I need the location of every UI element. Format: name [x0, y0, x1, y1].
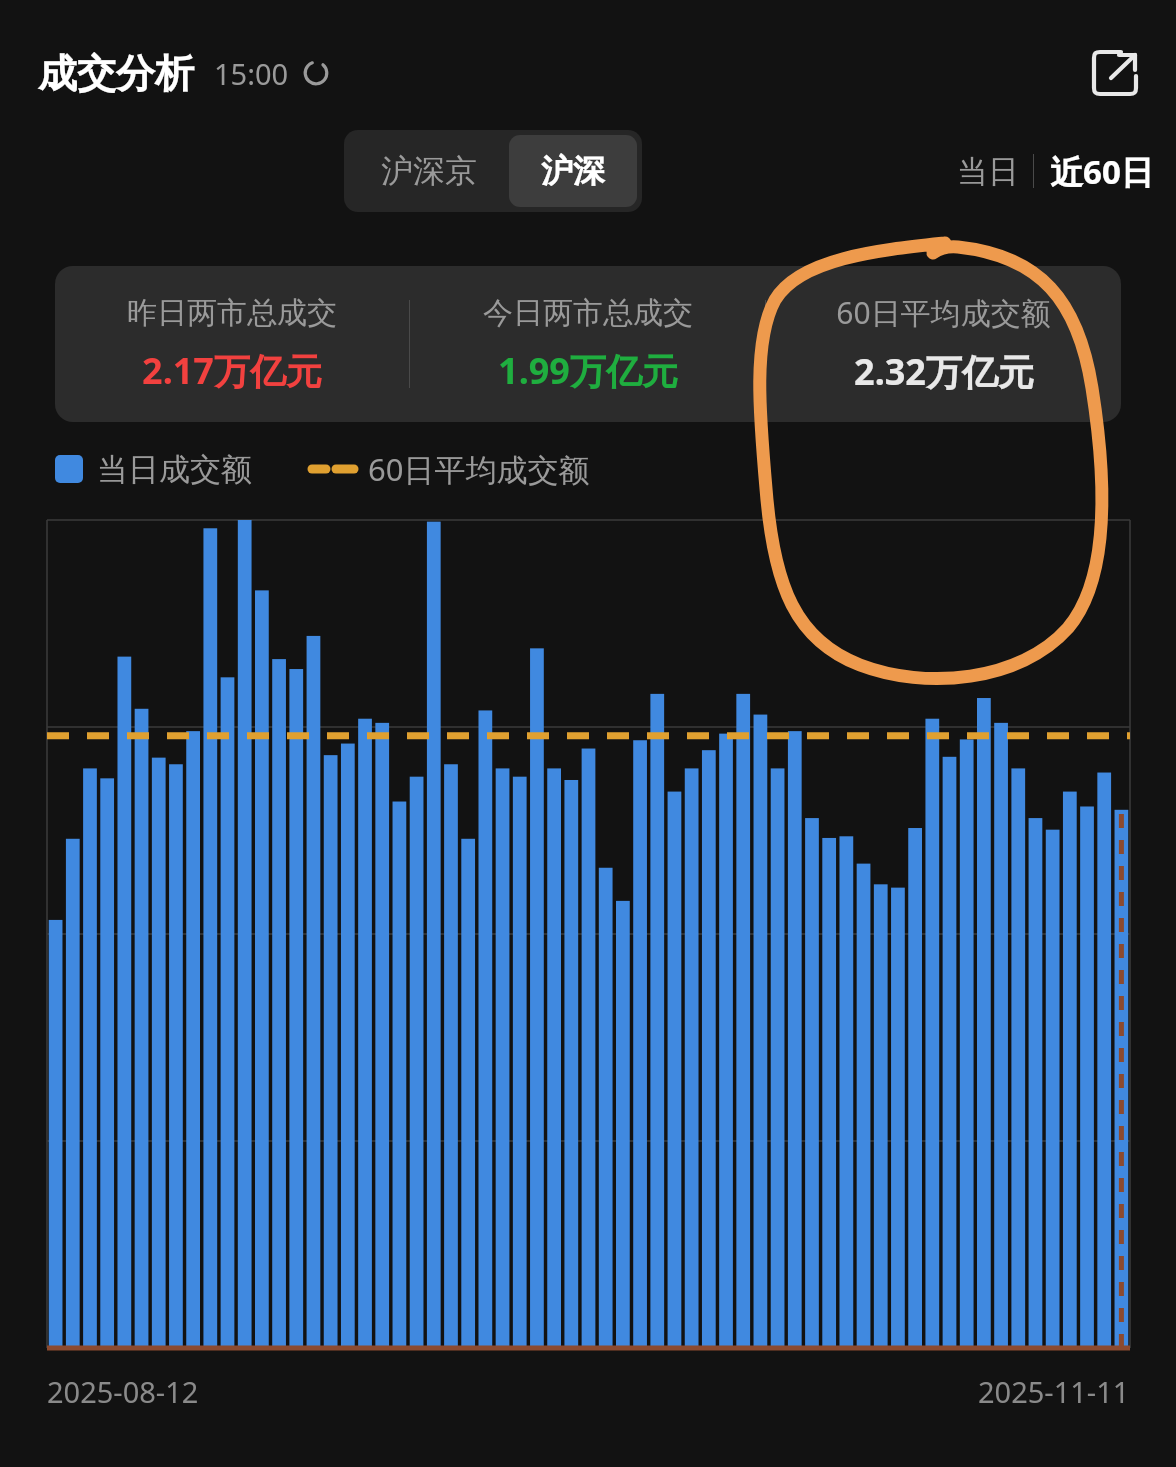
- button[interactable]: 当日: [943, 142, 1033, 201]
- button[interactable]: 近60日: [1034, 141, 1176, 202]
- staticText: 昨日两市总成交: [127, 294, 337, 332]
- button[interactable]: Share: [1084, 42, 1146, 104]
- staticText: 当日: [957, 152, 1019, 191]
- staticText: 2.17万亿元: [142, 346, 322, 395]
- staticText: 近60日: [1050, 149, 1154, 194]
- staticText: 当日成交额: [97, 450, 252, 489]
- staticText: 60日平均成交额: [836, 292, 1051, 333]
- button[interactable]: 沪深京: [349, 135, 509, 207]
- staticText: 沪深: [541, 151, 605, 191]
- staticText: 1.99万亿元: [498, 346, 678, 395]
- staticText: 15:00: [214, 54, 289, 93]
- staticText: 2025-11-11: [978, 1372, 1130, 1411]
- button[interactable]: 沪深: [509, 135, 637, 207]
- staticText: 2025-08-12: [47, 1372, 199, 1411]
- staticText: 2.32万亿元: [854, 347, 1034, 396]
- staticText: 60日平均成交额: [368, 448, 590, 490]
- staticText: 沪深京: [381, 151, 477, 191]
- staticText: 成交分析: [38, 49, 194, 98]
- staticText: 今日两市总成交: [483, 294, 693, 332]
- button[interactable]: 昨日两市总成交: [55, 266, 1121, 422]
